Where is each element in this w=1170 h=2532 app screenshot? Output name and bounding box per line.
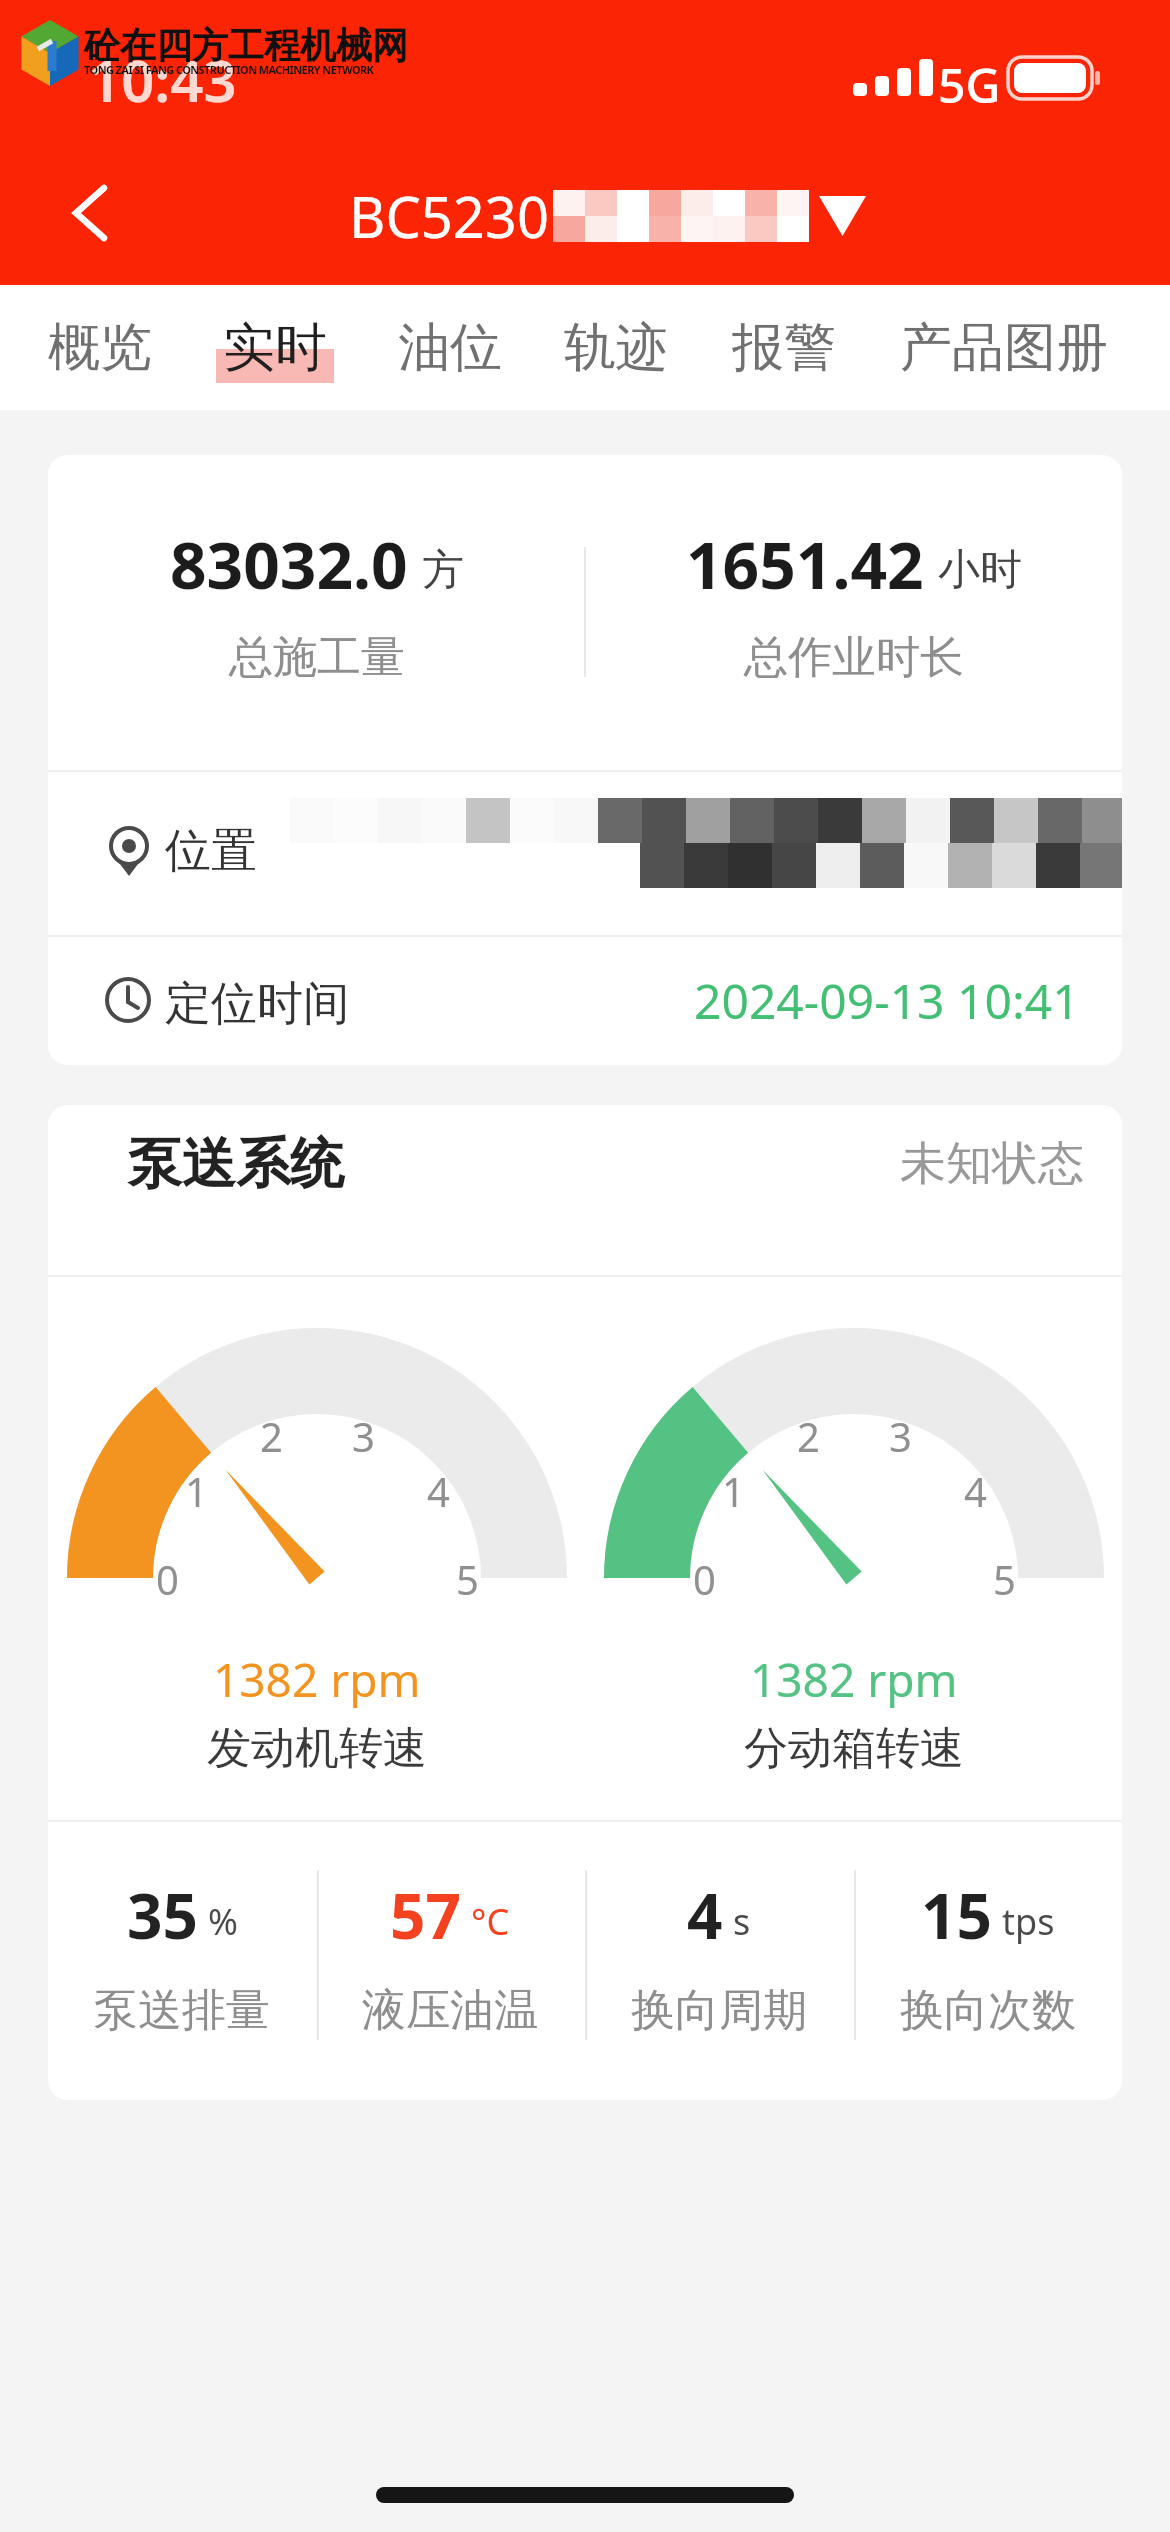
button[interactable]: 轨迹 <box>564 285 668 410</box>
staticText: 轨迹 <box>564 315 668 381</box>
staticText: 位置 <box>165 822 257 880</box>
staticText: 83032.0 <box>170 521 408 608</box>
button[interactable] <box>55 170 135 260</box>
staticText: 换向次数 <box>900 1983 1076 2038</box>
button[interactable]: 实时 <box>216 285 334 410</box>
staticText: 1 <box>722 1464 745 1516</box>
staticText: 泵送排量 <box>94 1983 270 2038</box>
staticText: 2024-09-13 10:41 <box>694 968 1080 1033</box>
staticText: 10:43 <box>88 40 237 119</box>
staticText: 1 <box>185 1464 208 1516</box>
button[interactable]: 位置 <box>48 770 1122 935</box>
button[interactable]: 油位 <box>398 285 502 410</box>
staticText: 泵送系统 <box>128 1130 344 1198</box>
staticText: 发动机转速 <box>207 1721 427 1776</box>
button[interactable]: 产品图册 <box>900 285 1108 410</box>
staticText: 57 <box>390 1873 461 1957</box>
staticText: 报警 <box>732 315 836 381</box>
staticText: tps <box>1002 1897 1055 1946</box>
staticText: 砼在四方工程机械网 <box>84 23 408 68</box>
staticText: 2 <box>797 1409 820 1461</box>
staticText: 实时 <box>223 315 327 381</box>
staticText: 3 <box>889 1409 912 1461</box>
staticText: 2 <box>260 1409 283 1461</box>
staticText: 定位时间 <box>165 975 349 1033</box>
staticText: 5 <box>993 1552 1016 1604</box>
staticText: 总作业时长 <box>744 630 964 685</box>
staticText: 小时 <box>938 544 1022 597</box>
staticText: BC5230 <box>349 178 549 254</box>
staticText: 方 <box>422 544 464 597</box>
staticText: 0 <box>693 1552 716 1604</box>
staticText: 换向周期 <box>631 1983 807 2038</box>
staticText: 0 <box>156 1552 179 1604</box>
staticText: 概览 <box>48 315 152 381</box>
staticText: 3 <box>352 1409 375 1461</box>
staticText: 未知状态 <box>900 1135 1084 1193</box>
staticText: 液压油温 <box>362 1983 538 2038</box>
staticText: 35 <box>127 1873 198 1957</box>
staticText: 1382 rpm <box>750 1648 958 1711</box>
button[interactable]: BC5230 <box>349 178 866 254</box>
staticText: 油位 <box>398 315 502 381</box>
staticText: 1651.42 <box>686 521 924 608</box>
staticText: 分动箱转速 <box>744 1721 964 1776</box>
staticText: 总施工量 <box>229 630 405 685</box>
staticText: TONG ZAI SI FANG CONSTRUCTION MACHINERY … <box>84 62 374 77</box>
staticText: °C <box>471 1897 510 1946</box>
staticText: 产品图册 <box>900 315 1108 381</box>
staticText: 15 <box>921 1873 992 1957</box>
staticText: 5 <box>456 1552 479 1604</box>
staticText: 4 <box>687 1873 723 1957</box>
button[interactable]: 定位时间 <box>48 935 1122 1065</box>
staticText: 1382 rpm <box>213 1648 421 1711</box>
staticText: 5G <box>938 52 1001 117</box>
staticText: 4 <box>964 1464 987 1516</box>
staticText: s <box>733 1897 751 1946</box>
button[interactable]: 概览 <box>48 285 152 410</box>
staticText: % <box>208 1897 238 1946</box>
staticText: 4 <box>427 1464 450 1516</box>
button[interactable]: 报警 <box>732 285 836 410</box>
